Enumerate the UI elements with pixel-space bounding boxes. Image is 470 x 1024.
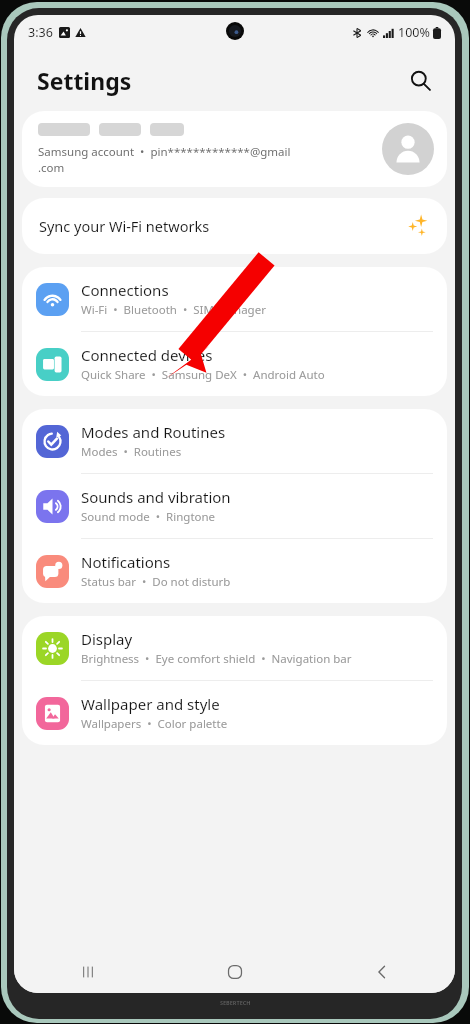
- button[interactable]: Display: [22, 616, 447, 680]
- staticText: Modes • Routines: [81, 444, 182, 460]
- button[interactable]: Sync your Wi-Fi networks: [22, 198, 447, 254]
- button[interactable]: Search settings: [399, 59, 441, 101]
- staticText: 3:36: [28, 24, 53, 41]
- staticText: Brightness • Eye comfort shield • Naviga…: [81, 651, 352, 667]
- button[interactable]: Wallpaper and style: [22, 681, 447, 745]
- staticText: Display: [81, 629, 133, 649]
- button[interactable]: Sounds and vibration: [22, 474, 447, 538]
- button[interactable]: Connections: [22, 267, 447, 331]
- button[interactable]: Home: [161, 951, 308, 993]
- staticText: Wallpapers • Color palette: [81, 716, 228, 732]
- staticText: Sync your Wi-Fi networks: [39, 216, 406, 236]
- staticText: Sounds and vibration: [81, 487, 231, 507]
- staticText: Status bar • Do not disturb: [81, 574, 231, 590]
- button[interactable]: Modes and Routines: [22, 409, 447, 473]
- staticText: Connected devices: [81, 345, 213, 365]
- staticText: 100%: [398, 24, 430, 41]
- staticText: Samsung account • pin*************@gmail…: [38, 144, 291, 175]
- button[interactable]: Notifications: [22, 539, 447, 603]
- button[interactable]: Connected devices: [22, 332, 447, 396]
- staticText: Settings: [37, 65, 132, 96]
- button[interactable]: Samsung account • pin*************@gmail…: [22, 111, 447, 187]
- button[interactable]: Back: [308, 951, 455, 993]
- staticText: Wi-Fi • Bluetooth • SIM manager: [81, 302, 266, 318]
- staticText: Modes and Routines: [81, 422, 226, 442]
- staticText: Notifications: [81, 552, 171, 572]
- staticText: SEBERTECH: [220, 999, 251, 1006]
- staticText: Sound mode • Ringtone: [81, 509, 216, 525]
- staticText: Connections: [81, 280, 169, 300]
- button[interactable]: Recents: [14, 951, 161, 993]
- staticText: Quick Share • Samsung DeX • Android Auto: [81, 367, 325, 383]
- staticText: Wallpaper and style: [81, 694, 220, 714]
